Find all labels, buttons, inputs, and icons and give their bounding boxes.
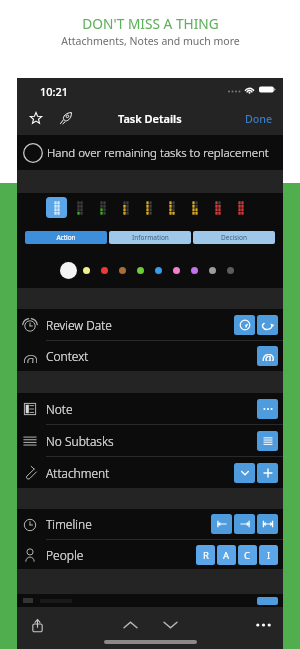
button[interactable]: Add attachment <box>257 463 278 483</box>
button[interactable]: Share <box>25 613 49 637</box>
button[interactable]: Boost <box>55 107 77 129</box>
button[interactable]: Colour 4 <box>113 260 131 280</box>
button[interactable]: Priority 5 <box>138 197 159 218</box>
button[interactable]: I <box>259 545 278 565</box>
button[interactable]: Timeline <box>17 509 283 539</box>
staticText: R <box>203 549 209 562</box>
button[interactable]: A <box>217 545 236 565</box>
button[interactable]: Colour 6 <box>149 260 167 280</box>
button[interactable]: Next task <box>157 612 183 638</box>
button[interactable]: Action <box>25 231 107 244</box>
button[interactable]: Colour 5 <box>131 260 149 280</box>
staticText: @ <box>262 349 274 361</box>
staticText: Hand over remaining tasks to replacement <box>47 145 269 161</box>
button[interactable]: Priority 3 <box>92 197 113 218</box>
button[interactable]: Note <box>17 393 283 424</box>
button[interactable]: No Subtasks <box>17 425 283 456</box>
button[interactable]: Colour 3 <box>95 260 113 280</box>
staticText: Task Details <box>118 111 182 126</box>
staticText: Action <box>56 233 76 242</box>
button[interactable]: Priority 6 <box>161 197 182 218</box>
staticText: C <box>244 549 251 562</box>
button[interactable]: Colour 1 <box>60 260 77 280</box>
staticText: Attachment <box>46 465 110 481</box>
button[interactable]: End <box>234 514 255 534</box>
button[interactable]: Colour 2 <box>77 260 95 280</box>
staticText: Decision <box>221 233 247 242</box>
button[interactable]: Priority 7 <box>184 197 205 218</box>
button[interactable]: Previous task <box>117 612 143 638</box>
button[interactable]: Priority 8 <box>207 197 228 218</box>
staticText: Information <box>132 233 169 242</box>
button[interactable]: Duration <box>257 514 278 534</box>
staticText: I <box>267 549 271 562</box>
button[interactable]: More options <box>251 613 275 637</box>
staticText: Done <box>245 112 273 127</box>
staticText: A <box>223 549 230 562</box>
staticText: DON'T MISS A THING <box>82 14 219 33</box>
button[interactable]: Show attachments <box>234 463 255 483</box>
button[interactable]: Colour 9 <box>203 260 221 280</box>
staticText: 10:21 <box>40 84 69 99</box>
staticText: Note <box>46 401 73 417</box>
button[interactable]: Decision <box>193 231 275 244</box>
button[interactable]: Subtasks <box>257 431 278 451</box>
button[interactable]: Favourite <box>25 107 47 129</box>
button[interactable]: Priority 9 <box>230 197 251 218</box>
staticText: Timeline <box>46 516 92 532</box>
button[interactable]: Context <box>257 346 278 366</box>
button[interactable]: Colour 8 <box>185 260 203 280</box>
button[interactable]: People <box>17 540 283 569</box>
staticText: Attachments, Notes and much more <box>61 34 240 48</box>
button[interactable]: C <box>238 545 257 565</box>
staticText: @ <box>23 349 37 363</box>
button[interactable]: @ <box>17 341 283 371</box>
button[interactable]: Start <box>211 514 232 534</box>
button[interactable]: Edit note <box>257 399 278 419</box>
staticText: People <box>46 547 84 563</box>
button[interactable]: R <box>196 545 215 565</box>
button[interactable]: Priority 1 <box>46 197 67 218</box>
button[interactable]: Repeat <box>257 315 278 335</box>
button[interactable]: Hand over remaining tasks to replacement <box>17 135 283 170</box>
button[interactable]: Review Date <box>17 309 283 340</box>
button[interactable]: Colour 7 <box>167 260 185 280</box>
staticText: Review Date <box>46 317 112 333</box>
button[interactable]: Information <box>109 231 191 244</box>
staticText: Context <box>46 348 89 364</box>
button[interactable]: Attachment <box>17 457 283 488</box>
button[interactable]: Colour 10 <box>221 260 239 280</box>
button[interactable]: Priority 2 <box>69 197 90 218</box>
button[interactable]: Review date <box>234 315 255 335</box>
staticText: No Subtasks <box>46 433 114 449</box>
button[interactable]: Priority 4 <box>115 197 136 218</box>
button[interactable]: Done <box>241 105 277 130</box>
